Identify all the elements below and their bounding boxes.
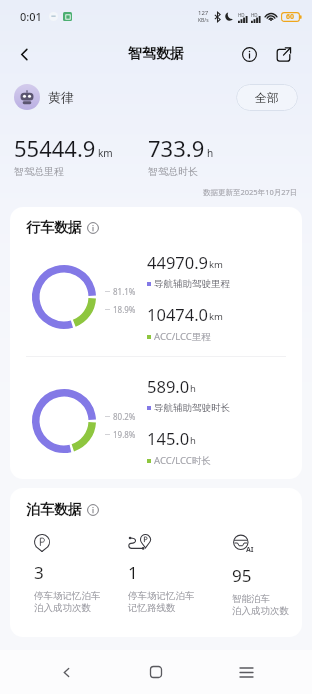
staticText: 127 [198, 9, 209, 17]
staticText: 智能泊车 [232, 593, 270, 605]
staticText: 1 [128, 561, 138, 584]
button[interactable]: Back [42, 650, 90, 694]
staticText: 44970.9 [147, 251, 209, 273]
staticText: ACC/LCC时长 [154, 454, 211, 467]
staticText: 60 [286, 12, 295, 22]
staticText: km [209, 310, 223, 323]
staticText: 记忆路线数 [128, 602, 176, 614]
button[interactable]: 行车数据 [26, 219, 99, 237]
button[interactable]: 3 [34, 534, 128, 614]
button[interactable]: 1 [128, 534, 232, 614]
staticText: 3 [34, 561, 44, 584]
staticText: 泊入成功次数 [232, 605, 289, 617]
staticText: 733.9 [148, 133, 205, 163]
button[interactable]: 泊车数据 [26, 501, 99, 519]
staticText: 泊车数据 [26, 501, 82, 519]
button[interactable]: Back [6, 36, 42, 72]
button[interactable]: Home [132, 650, 180, 694]
staticText: 95 [232, 564, 252, 587]
staticText: 18.9% [113, 304, 136, 315]
staticText: h [207, 146, 214, 160]
staticText: 10474.0 [147, 303, 209, 325]
staticText: KB/s [198, 17, 209, 24]
staticText: 数据更新至2025年10月27日 [203, 187, 298, 197]
staticText: 55444.9 [14, 133, 96, 163]
staticText: 智驾数据 [128, 45, 184, 63]
staticText: 589.0 [147, 375, 190, 397]
staticText: HD [251, 12, 258, 18]
staticText: 81.1% [113, 286, 136, 297]
staticText: 黄律 [48, 89, 74, 105]
staticText: AI [246, 545, 254, 555]
button[interactable]: Recents [222, 650, 270, 694]
staticText: km [209, 258, 223, 271]
staticText: h [190, 382, 196, 395]
staticText: 19.8% [113, 429, 136, 440]
staticText: HD [238, 12, 245, 18]
staticText: 停车场记忆泊车 [128, 590, 195, 602]
staticText: 全部 [255, 90, 279, 105]
staticText: 智驾总时长 [148, 165, 198, 178]
staticText: 停车场记忆泊车 [34, 590, 101, 602]
staticText: km [98, 146, 113, 160]
staticText: 泊入成功次数 [34, 602, 91, 614]
button[interactable]: 全部 [236, 84, 298, 111]
button[interactable]: Share [266, 37, 300, 71]
staticText: 行车数据 [26, 219, 82, 237]
button[interactable]: AI [232, 534, 298, 617]
button[interactable]: Info [232, 37, 266, 71]
staticText: 导航辅助驾驶时长 [154, 402, 230, 414]
staticText: h [190, 434, 196, 447]
staticText: 智驾总里程 [14, 165, 64, 178]
staticText: 0:01 [20, 9, 42, 24]
staticText: 145.0 [147, 427, 190, 449]
staticText: 导航辅助驾驶里程 [154, 278, 230, 290]
staticText: 80.2% [113, 411, 136, 422]
staticText: ACC/LCC里程 [154, 330, 211, 343]
